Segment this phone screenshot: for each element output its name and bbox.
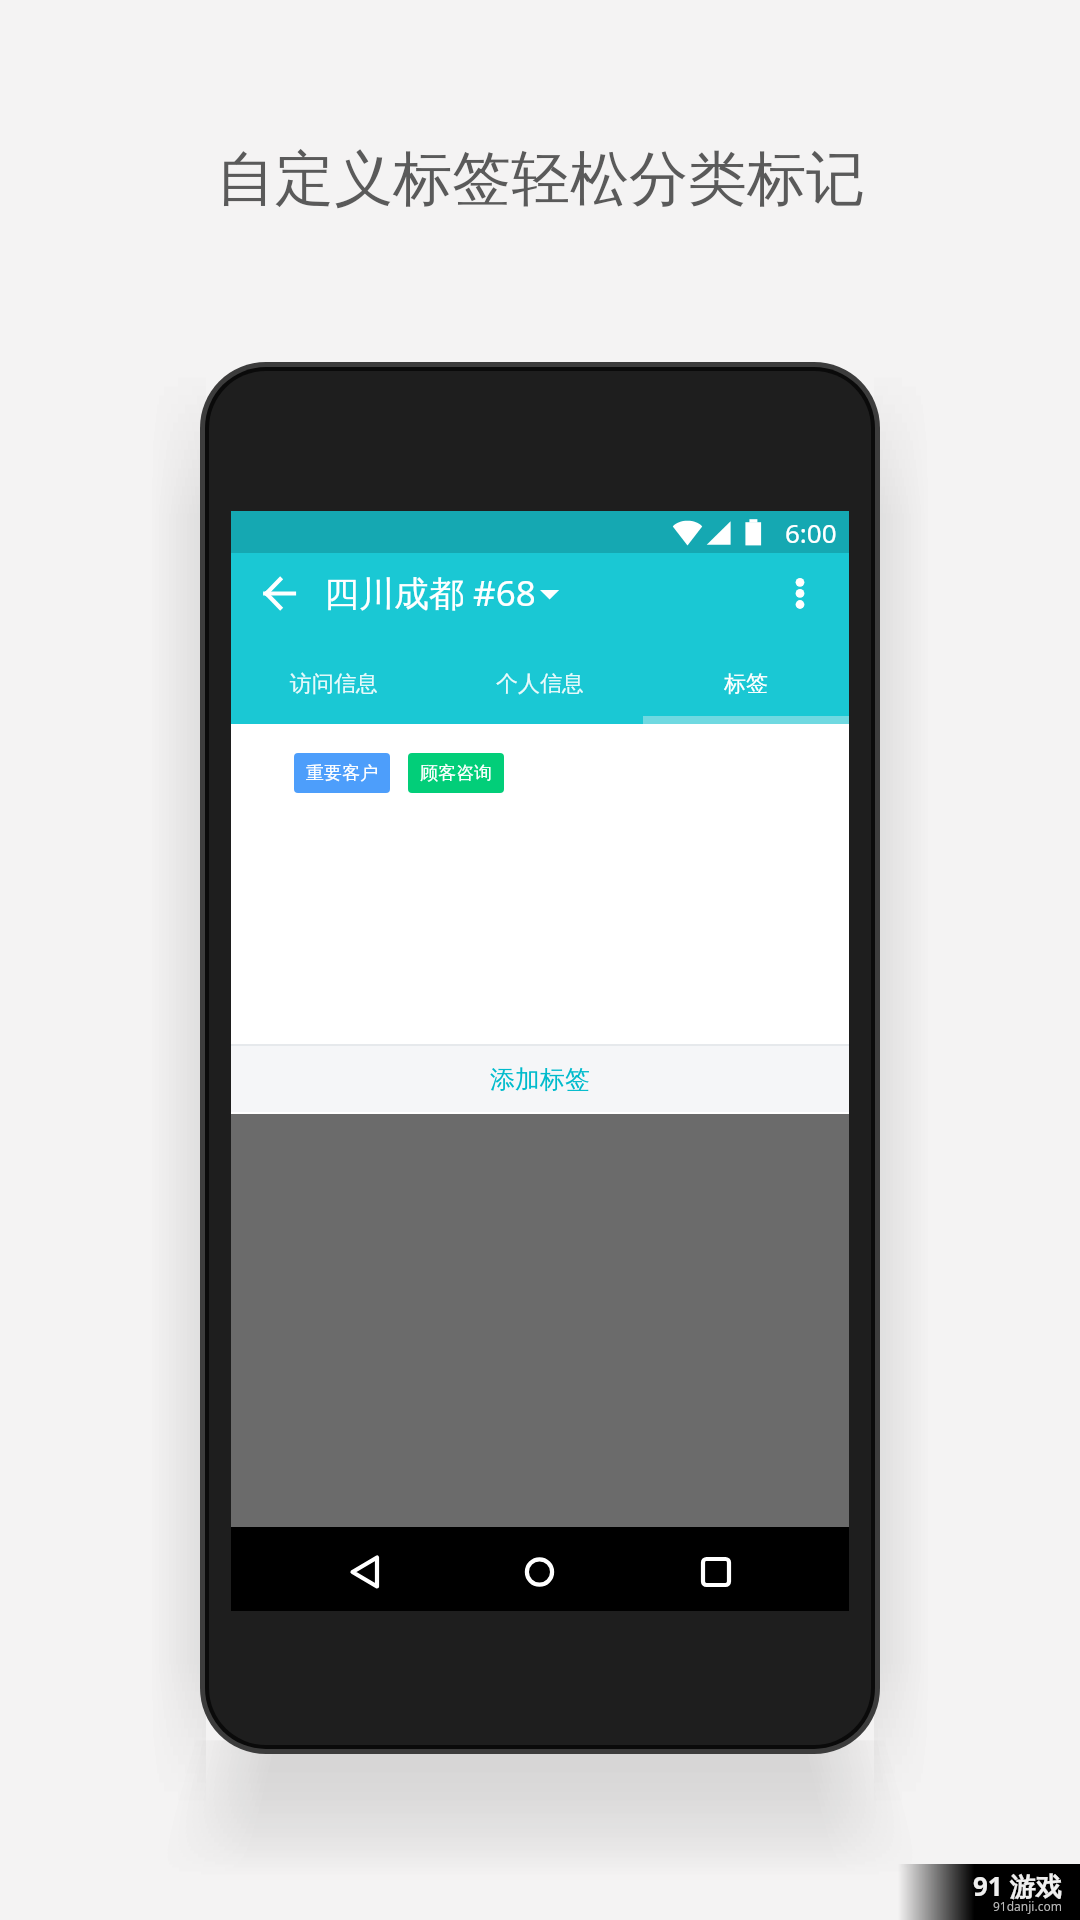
button[interactable]: 添加标签 [231,1046,849,1112]
staticText: 个人信息 [496,670,584,698]
staticText: 标签 [724,670,768,698]
button[interactable]: 个人信息 [437,642,643,724]
button[interactable]: Back [249,564,309,624]
staticText: 91 游戏 [973,1868,1062,1904]
button[interactable]: Back [335,1527,395,1611]
button[interactable]: 访问信息 [231,642,437,724]
staticText: 91danji.com [993,1898,1062,1914]
button[interactable]: Home [509,1527,569,1611]
button[interactable]: Recent apps [686,1527,746,1611]
staticText: 重要客户 [306,762,378,785]
button[interactable]: 标签 [643,642,849,724]
staticText: 访问信息 [290,670,378,698]
staticText: 顾客咨询 [420,762,492,785]
staticText: 自定义标签轻松分类标记 [216,142,865,216]
button[interactable]: More options [776,568,826,618]
button[interactable]: 重要客户 [294,753,390,793]
button[interactable]: 顾客咨询 [408,753,504,793]
staticText: 四川成都 #68 [324,569,536,617]
staticText: 添加标签 [490,1064,590,1095]
staticText: 6:00 [785,515,837,550]
